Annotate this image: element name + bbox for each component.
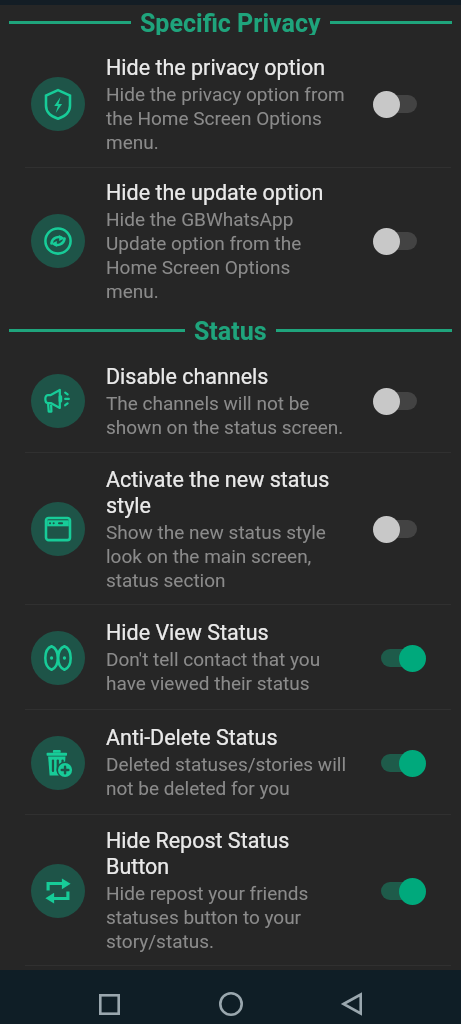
button[interactable] xyxy=(371,381,427,421)
staticText: Deleted statuses/stories will not be del… xyxy=(106,753,347,800)
button[interactable]: Hide the update option xyxy=(0,168,461,314)
staticText: Hide the privacy option xyxy=(106,55,326,80)
button[interactable]: Activate the new status style xyxy=(0,453,461,605)
staticText: Hide the GBWhatsApp Update option from t… xyxy=(106,208,347,303)
button[interactable] xyxy=(371,638,427,678)
button[interactable]: Anti-Delete Status xyxy=(0,710,461,815)
staticText: Hide Repost Status Button xyxy=(106,828,347,879)
button[interactable]: Disable channels xyxy=(0,349,461,453)
button[interactable]: Recents xyxy=(86,992,132,1016)
staticText: Disable channels xyxy=(106,364,269,389)
staticText: Hide View Status xyxy=(106,620,269,645)
staticText: The channels will not be shown on the st… xyxy=(106,392,347,439)
staticText: Don't tell contact that you have viewed … xyxy=(106,648,347,695)
button[interactable] xyxy=(371,743,427,783)
button[interactable]: Hide the privacy option xyxy=(0,40,461,168)
button[interactable] xyxy=(371,84,427,124)
staticText: Hide repost your friends statuses button… xyxy=(106,882,347,953)
button[interactable]: Home xyxy=(208,992,254,1016)
staticText: Specific Privacy xyxy=(140,9,321,35)
button[interactable] xyxy=(371,221,427,261)
staticText: Hide the privacy option from the Home Sc… xyxy=(106,83,347,154)
staticText: Activate the new status style xyxy=(106,467,347,518)
button[interactable]: Back xyxy=(329,992,375,1016)
staticText: Anti-Delete Status xyxy=(106,725,278,750)
button[interactable]: Hide View Status xyxy=(0,605,461,710)
button[interactable] xyxy=(371,871,427,911)
button[interactable] xyxy=(371,509,427,549)
staticText: Show the new status style look on the ma… xyxy=(106,521,347,592)
button[interactable]: Hide Repost Status Button xyxy=(0,815,461,966)
staticText: Status xyxy=(194,317,267,343)
staticText: Hide the update option xyxy=(106,180,324,205)
